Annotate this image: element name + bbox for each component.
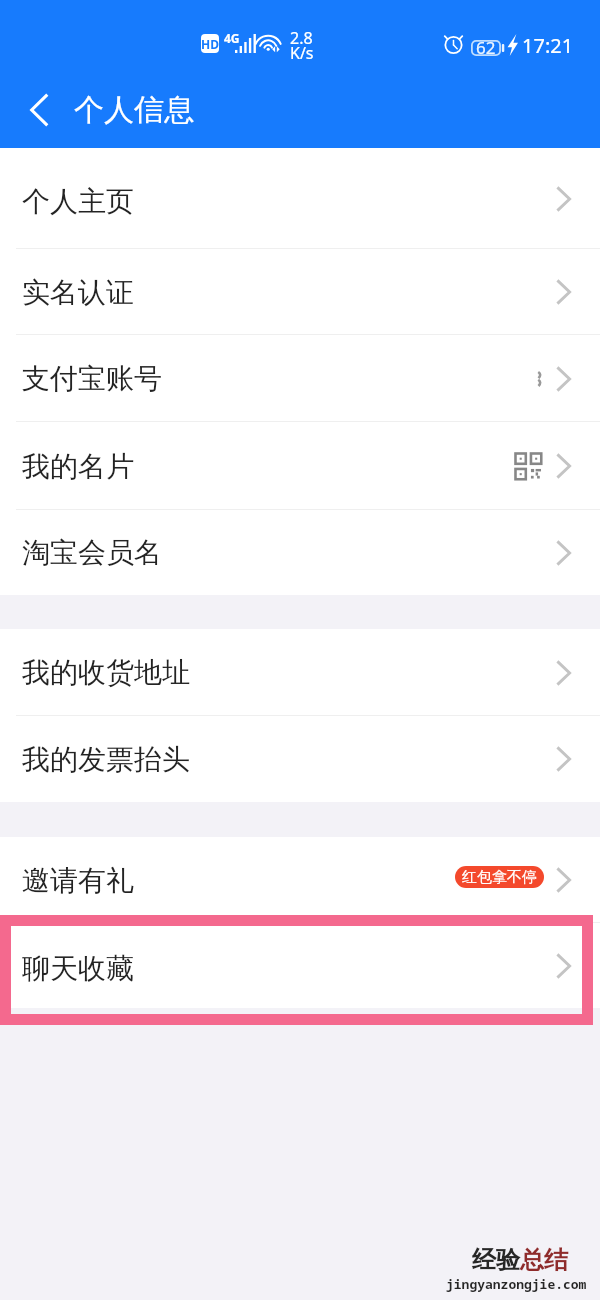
staticText: 聊天收藏 bbox=[22, 951, 134, 986]
staticText: 17:21 bbox=[522, 32, 574, 59]
button[interactable]: 支付宝账号 bbox=[0, 335, 600, 422]
button[interactable]: 实名认证 bbox=[0, 249, 600, 335]
staticText: 红包拿不停 bbox=[462, 868, 537, 887]
staticText: 支付宝账号 bbox=[22, 361, 162, 396]
staticText: HD bbox=[201, 36, 219, 52]
staticText: 邀请有礼 bbox=[22, 863, 134, 898]
staticText: 实名认证 bbox=[22, 275, 134, 310]
staticText: 个人信息 bbox=[74, 91, 194, 129]
staticText: 2.8 bbox=[290, 27, 313, 49]
staticText: 我的名片 bbox=[22, 449, 134, 484]
staticText: 个人主页 bbox=[22, 184, 134, 219]
button[interactable]: Back bbox=[11, 82, 67, 138]
staticText: 淘宝会员名 bbox=[22, 535, 162, 570]
staticText: jingyanzongjie.com bbox=[446, 1275, 587, 1293]
staticText: K/s bbox=[290, 42, 314, 64]
button[interactable]: 我的发票抬头 bbox=[0, 716, 600, 802]
button[interactable]: 我的名片 bbox=[0, 422, 600, 510]
staticText: 经验 bbox=[472, 1245, 520, 1275]
staticText: 总结 bbox=[520, 1245, 568, 1275]
button[interactable]: 我的收货地址 bbox=[0, 629, 600, 716]
staticText: 我的发票抬头 bbox=[22, 742, 190, 777]
button[interactable]: 聊天收藏 bbox=[0, 923, 600, 1008]
staticText: 4G bbox=[224, 30, 240, 46]
button[interactable]: 个人主页 bbox=[0, 148, 600, 249]
button[interactable]: 邀请有礼 bbox=[0, 837, 600, 923]
button[interactable]: 淘宝会员名 bbox=[0, 510, 600, 595]
staticText: 62 bbox=[476, 36, 496, 59]
staticText: 我的收货地址 bbox=[22, 655, 190, 690]
